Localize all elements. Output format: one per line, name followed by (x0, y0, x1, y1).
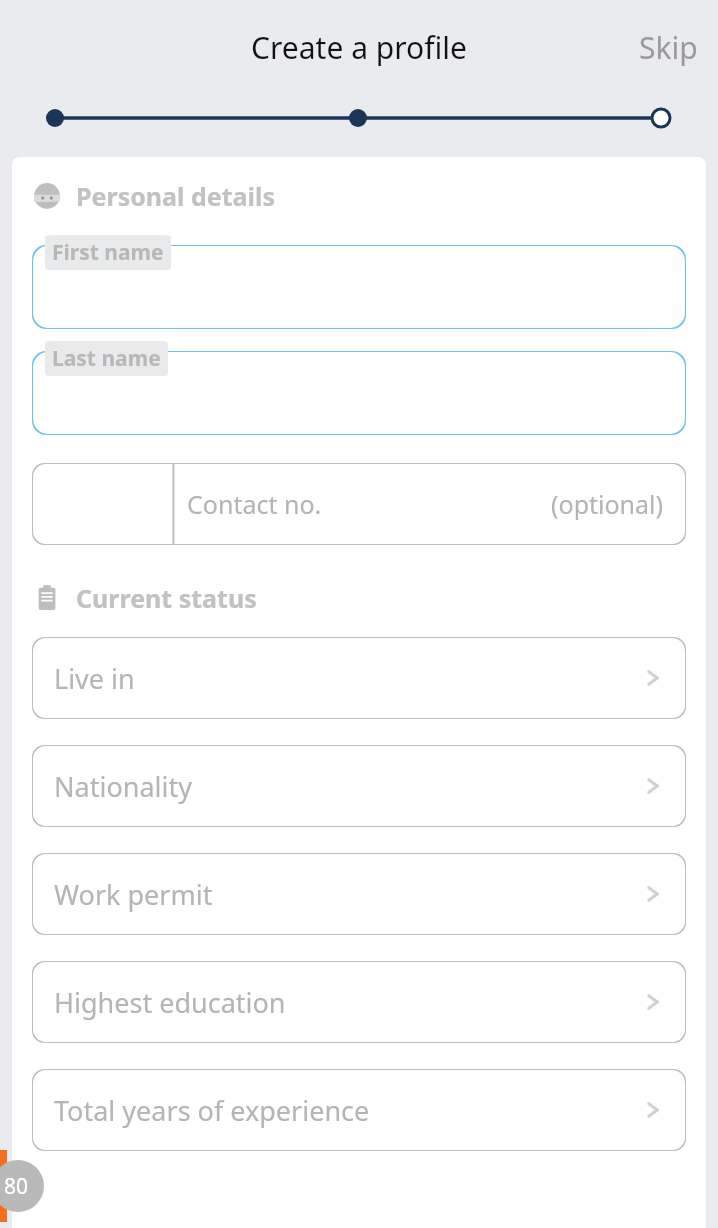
button[interactable] (32, 351, 686, 435)
staticText: First name (52, 238, 164, 267)
staticText: Current status (76, 581, 257, 615)
button[interactable]: Nationality (32, 745, 686, 827)
other: Open Nationality (640, 773, 666, 799)
other: Open Highest education (640, 989, 666, 1015)
other: Open Live in (640, 665, 666, 691)
staticText: Highest education (54, 984, 286, 1021)
other: Open Total years of experience (640, 1097, 666, 1123)
staticText: Contact no. (187, 487, 322, 521)
staticText: (optional) (551, 487, 664, 521)
staticText: Skip (639, 27, 698, 68)
button[interactable]: Highest education (32, 961, 686, 1043)
staticText: Personal details (76, 179, 276, 213)
staticText: Work permit (54, 876, 213, 913)
staticText: Nationality (54, 768, 192, 805)
button[interactable] (32, 245, 686, 329)
button[interactable]: Contact no. (32, 463, 686, 545)
button[interactable]: Skip (619, 17, 718, 78)
button[interactable]: Total years of experience (32, 1069, 686, 1151)
staticText: Live in (54, 660, 135, 697)
button[interactable]: Live in (32, 637, 686, 719)
button[interactable]: Work permit (32, 853, 686, 935)
other: Open Work permit (640, 881, 666, 907)
staticText: Create a profile (251, 27, 467, 68)
staticText: 80 (4, 1172, 29, 1201)
staticText: Last name (52, 344, 161, 373)
staticText: Total years of experience (54, 1092, 370, 1129)
